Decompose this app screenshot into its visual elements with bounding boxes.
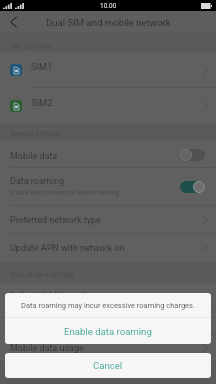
staticText: SIM card info — [10, 43, 52, 51]
staticText: Data roaming — [10, 176, 64, 187]
button[interactable]: Default SIM for calls — [0, 283, 216, 309]
button[interactable]: SIM1 — [0, 52, 216, 88]
button[interactable]: Data roaming — [0, 168, 216, 206]
staticText: General settings — [10, 130, 61, 138]
staticText: Enable data roaming — [64, 326, 152, 337]
button[interactable]: Update APN with network on — [0, 234, 216, 262]
staticText: Default card settings — [10, 271, 75, 279]
staticText: Default SIM for calls — [10, 291, 92, 302]
button[interactable]: Default SIM for SMS — [0, 309, 216, 335]
button[interactable]: Mobile data — [0, 141, 216, 168]
staticText: Preferred network type — [10, 215, 101, 226]
staticText: Default SIM for SMS — [10, 317, 91, 328]
button[interactable]: Cancel — [5, 353, 211, 378]
staticText: Dual SIM and mobile network — [46, 17, 171, 28]
staticText: Mobile data — [10, 151, 58, 162]
button[interactable]: Mobile data usage — [0, 335, 216, 361]
button[interactable]: SIM2 — [0, 88, 216, 124]
staticText: 10.00 — [100, 2, 117, 10]
button[interactable]: Enable data roaming — [5, 318, 211, 344]
staticText: Data roaming may incur excessive roaming… — [21, 301, 195, 310]
button[interactable]: Preferred network type — [0, 206, 216, 234]
staticText: Enable data connection when roaming — [10, 189, 119, 197]
staticText: SIM2 — [31, 97, 53, 108]
staticText: Cancel — [93, 360, 123, 371]
staticText: Mobile data usage — [10, 343, 84, 354]
button[interactable]: Back — [0, 11, 26, 33]
staticText: Update APN with network on — [10, 243, 125, 254]
staticText: SIM1 — [31, 61, 53, 72]
